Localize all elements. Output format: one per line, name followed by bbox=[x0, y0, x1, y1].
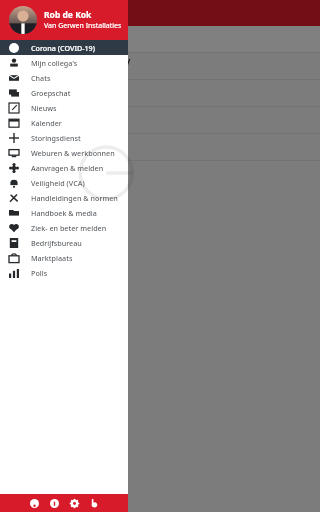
staticText: Handleidingen & normen bbox=[31, 193, 118, 203]
staticText: ECOM ICT BV bbox=[38, 109, 96, 121]
staticText: Groepschat bbox=[31, 88, 71, 98]
staticText: Kalender bbox=[31, 118, 62, 128]
button[interactable]: Rob de Kok bbox=[0, 0, 128, 40]
staticText: Development bbox=[38, 67, 86, 77]
button[interactable]: Kalender bbox=[0, 115, 128, 130]
staticText: Rob de Kok bbox=[44, 9, 92, 21]
button[interactable]: SalesRapp bbox=[0, 134, 320, 161]
button[interactable]: Marktplaats bbox=[0, 250, 128, 265]
button[interactable]: Handleidingen & normen bbox=[0, 190, 128, 205]
button[interactable]: ECOM ICT BV bbox=[0, 107, 320, 134]
staticText: Veiligheid (VCA) bbox=[31, 178, 85, 188]
button[interactable]: Settings bbox=[64, 494, 84, 512]
button[interactable]: Info bbox=[44, 494, 64, 512]
button[interactable]: Nieuws bbox=[0, 100, 128, 115]
button[interactable]: Chats bbox=[0, 70, 128, 85]
button[interactable]: Handboek & media bbox=[0, 205, 128, 220]
staticText: Van Gerwen Installaties B.V. bbox=[44, 21, 128, 31]
staticText: ECOM bbox=[38, 82, 65, 94]
staticText: Corona (COVID-19) bbox=[31, 43, 95, 53]
staticText: DOTCOM Projects BV bbox=[38, 55, 131, 67]
button[interactable]: Storingsdienst bbox=[0, 130, 128, 145]
staticText: Development bbox=[38, 148, 86, 158]
staticText: Aanvragen & melden bbox=[31, 163, 104, 173]
button[interactable]: Back bbox=[6, 4, 24, 22]
button[interactable]: Mijn collega's bbox=[0, 55, 128, 70]
staticText: Storingsdienst bbox=[31, 133, 81, 143]
staticText: ICT bbox=[38, 121, 50, 131]
staticText: Chats bbox=[31, 73, 51, 83]
staticText: Development bbox=[38, 94, 86, 104]
button[interactable]: Help bbox=[24, 494, 44, 512]
staticText: Ziek- en beter melden bbox=[31, 223, 107, 233]
staticText: Marktplaats bbox=[31, 253, 73, 263]
button[interactable]: Weburen & werkbonnen bbox=[0, 145, 128, 160]
staticText: Bedrijfsbureau bbox=[31, 238, 82, 248]
staticText: Nieuws bbox=[31, 103, 57, 113]
button[interactable]: Corona (COVID-19) bbox=[0, 40, 128, 55]
button[interactable]: ECOM bbox=[0, 80, 320, 107]
staticText: Polls bbox=[31, 268, 48, 278]
button[interactable]: Groepschat bbox=[0, 85, 128, 100]
button[interactable]: Bedrijfsbureau bbox=[0, 235, 128, 250]
staticText: SalesRapp bbox=[38, 136, 84, 148]
button[interactable]: Ziek- en beter melden bbox=[0, 220, 128, 235]
staticText: Weburen & werkbonnen bbox=[31, 148, 115, 158]
staticText: Mijn collega's bbox=[31, 58, 78, 68]
button[interactable]: Veiligheid (VCA) bbox=[0, 175, 128, 190]
button[interactable]: DOTCOM Projects BV bbox=[0, 53, 320, 80]
button[interactable]: About bbox=[84, 494, 104, 512]
button[interactable]: Aanvragen & melden bbox=[0, 160, 128, 175]
staticText: Nieuws bbox=[48, 6, 87, 21]
staticText: Handboek & media bbox=[31, 208, 97, 218]
button[interactable]: Polls bbox=[0, 265, 128, 280]
